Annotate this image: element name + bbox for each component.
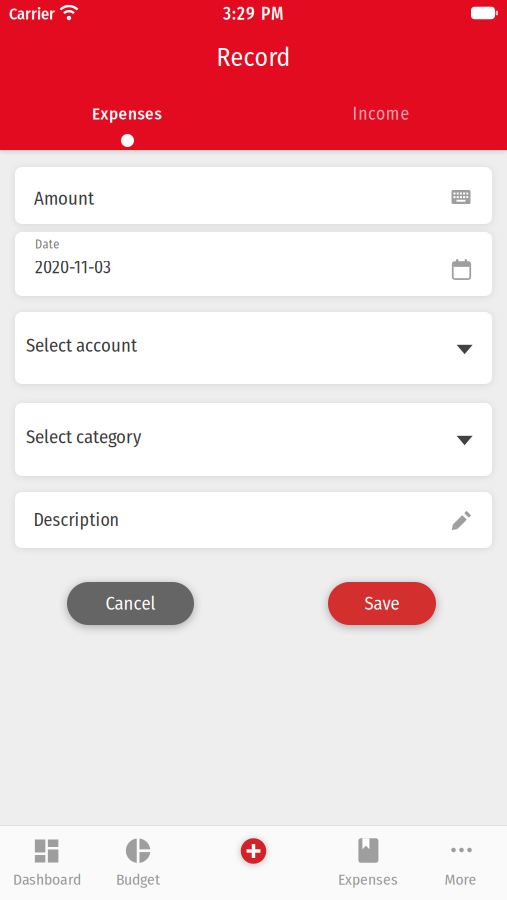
staticText: Expenses xyxy=(92,104,161,124)
staticText: 3:29 PM xyxy=(223,3,284,24)
button[interactable]: Date xyxy=(15,232,492,296)
staticText: Expenses xyxy=(338,870,398,889)
staticText: Description xyxy=(33,509,118,531)
button[interactable]: Budget xyxy=(93,825,183,900)
staticText: Carrier xyxy=(9,4,55,24)
staticText: Save xyxy=(364,592,399,615)
staticText: Select category xyxy=(26,426,141,448)
button[interactable]: Description xyxy=(15,492,492,548)
staticText: Select account xyxy=(26,334,137,357)
button[interactable]: Save xyxy=(328,582,436,625)
staticText: 2020-11-03 xyxy=(35,257,111,278)
button[interactable]: Amount xyxy=(15,167,492,224)
staticText: More xyxy=(444,870,476,889)
staticText: Income xyxy=(352,103,409,124)
button[interactable]: Expenses xyxy=(323,825,413,900)
button[interactable]: Select category xyxy=(15,403,492,476)
button[interactable]: Cancel xyxy=(67,582,194,625)
staticText: Amount xyxy=(34,187,94,210)
button[interactable] xyxy=(227,825,279,877)
staticText: Budget xyxy=(116,870,160,889)
button[interactable]: Select account xyxy=(15,312,492,384)
staticText: Record xyxy=(216,42,290,73)
button[interactable]: Expenses xyxy=(0,97,253,131)
staticText: Dashboard xyxy=(13,870,81,889)
staticText: Cancel xyxy=(105,592,155,615)
button[interactable]: Income xyxy=(254,97,507,131)
button[interactable]: Dashboard xyxy=(2,825,92,900)
staticText: Date xyxy=(35,237,59,252)
button[interactable]: More xyxy=(419,825,507,900)
